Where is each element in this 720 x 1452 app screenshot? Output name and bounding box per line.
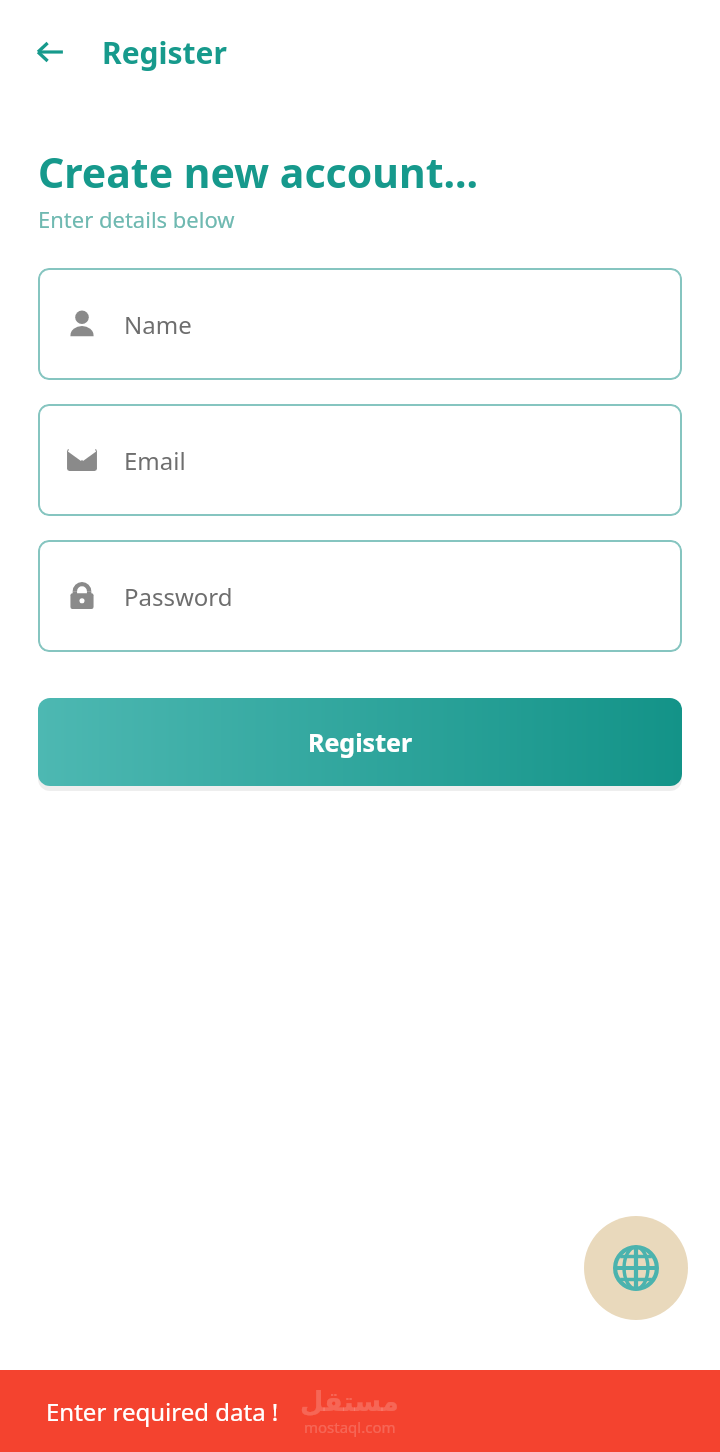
button[interactable]: Register	[38, 698, 682, 786]
staticText: Enter required data !	[46, 1395, 279, 1428]
staticText: mostaql.com	[304, 1417, 396, 1437]
staticText: Create new account...	[38, 144, 479, 200]
staticText: Register	[102, 32, 227, 73]
button[interactable]: Name	[38, 268, 682, 380]
staticText: Name	[124, 308, 192, 341]
button[interactable]: Password	[38, 540, 682, 652]
button[interactable]: Change language	[584, 1216, 688, 1320]
staticText: مستقل	[300, 1386, 399, 1417]
staticText: Enter details below	[38, 204, 235, 234]
staticText: Email	[124, 444, 186, 477]
staticText: Register	[308, 725, 413, 759]
button[interactable]: Enter required data !	[0, 1370, 720, 1452]
button[interactable]: Email	[38, 404, 682, 516]
button[interactable]: Back	[26, 28, 74, 76]
staticText: Password	[124, 580, 233, 613]
